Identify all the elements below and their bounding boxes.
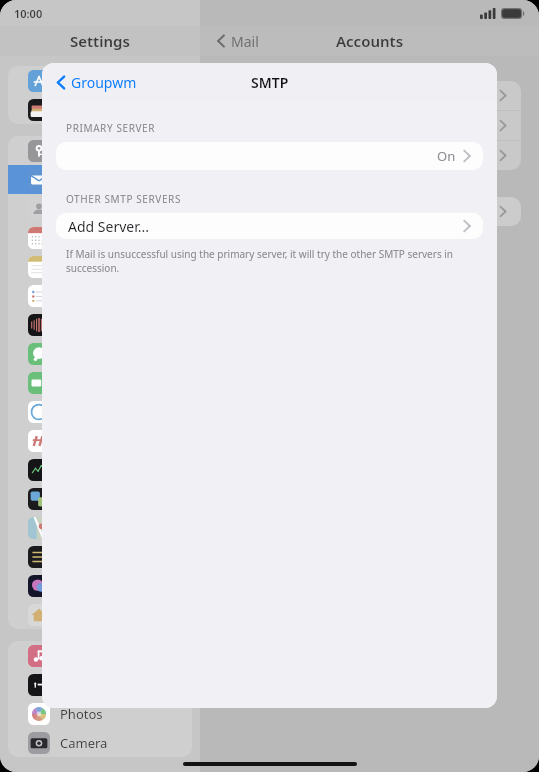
button[interactable] <box>218 81 521 110</box>
button[interactable]: Wallet <box>8 95 192 124</box>
button[interactable]: Mail <box>8 165 192 194</box>
staticText: 10:00 <box>14 6 43 21</box>
button[interactable]: TV <box>8 670 192 699</box>
button[interactable]: Passwords <box>8 136 192 165</box>
staticText: PRIMARY SERVER <box>66 121 156 135</box>
button[interactable]: Photos <box>8 699 192 728</box>
staticText: If Mail is unsuccessful using the primar… <box>66 247 477 275</box>
staticText: OTHER SMTP SERVERS <box>66 192 181 206</box>
button[interactable]: Music <box>8 641 192 670</box>
staticText: Groupwm <box>71 73 137 92</box>
button[interactable]: Safari <box>8 397 192 426</box>
button[interactable]: Messages <box>8 339 192 368</box>
staticText: Weekly <box>449 203 493 221</box>
button[interactable]: Stocks <box>8 455 192 484</box>
button[interactable]: Camera <box>8 728 192 757</box>
button[interactable]: Reminders <box>8 281 192 310</box>
button[interactable]: Mail <box>216 26 259 56</box>
staticText: Add Server... <box>68 217 149 236</box>
staticText: On <box>437 147 456 165</box>
staticText: Photos <box>60 705 103 723</box>
staticText: App Store <box>60 72 120 90</box>
button[interactable]: News <box>8 426 192 455</box>
button[interactable]: FaceTime <box>8 368 192 397</box>
button[interactable] <box>218 111 521 140</box>
button[interactable]: Weekly <box>218 197 521 226</box>
button[interactable] <box>218 141 521 170</box>
staticText: Accounts <box>336 31 404 51</box>
staticText: Calendar <box>60 229 115 247</box>
button[interactable]: Groupwm <box>52 63 141 101</box>
staticText: Camera <box>60 734 108 752</box>
button[interactable]: Translate <box>8 484 192 513</box>
button[interactable]: Add Server... <box>56 213 483 239</box>
button[interactable]: Home <box>8 600 192 629</box>
button[interactable]: Notes <box>8 252 192 281</box>
button[interactable]: App Store <box>8 66 192 95</box>
staticText: Contacts <box>60 200 114 218</box>
button[interactable]: Shortcuts <box>8 542 192 571</box>
button[interactable]: Maps <box>8 513 192 542</box>
button[interactable]: Voice Memos <box>8 310 192 339</box>
button[interactable]: Contacts <box>8 194 192 223</box>
staticText: Settings <box>70 31 130 51</box>
button[interactable]: Calendar <box>8 223 192 252</box>
staticText: Notes <box>60 258 96 276</box>
staticText: SMTP <box>251 73 289 92</box>
button[interactable]: On <box>56 142 483 170</box>
button[interactable]: Siri <box>8 571 192 600</box>
staticText: Mail <box>231 32 259 51</box>
